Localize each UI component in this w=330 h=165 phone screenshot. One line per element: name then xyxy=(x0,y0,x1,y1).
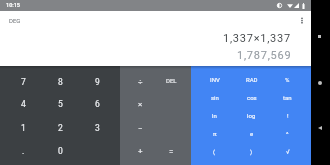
staticText: INV xyxy=(210,76,220,83)
button[interactable]: ) xyxy=(233,142,270,160)
button[interactable]: 0 xyxy=(42,139,79,162)
staticText: √ xyxy=(286,148,290,155)
staticText: 7 xyxy=(21,77,26,87)
button[interactable]: ^ xyxy=(269,124,306,142)
button[interactable]: More options xyxy=(294,12,310,28)
staticText: 6 xyxy=(95,99,100,109)
staticText: ) xyxy=(250,148,253,155)
staticText: % xyxy=(285,76,290,83)
button[interactable]: DEG xyxy=(4,13,26,27)
staticText: 10:15 xyxy=(6,2,20,8)
button[interactable]: 8 xyxy=(42,70,79,93)
staticText: e xyxy=(250,130,254,137)
staticText: DEL xyxy=(166,77,177,84)
staticText: 2 xyxy=(58,123,63,133)
staticText: sin xyxy=(211,94,219,101)
button[interactable]: − xyxy=(122,117,158,140)
staticText: ÷ xyxy=(138,78,143,87)
staticText: ( xyxy=(213,148,216,155)
button[interactable]: DEL xyxy=(153,69,189,92)
staticText: 8 xyxy=(58,77,63,87)
staticText: RAD xyxy=(246,76,258,83)
button[interactable]: cos xyxy=(233,88,270,106)
button[interactable]: Back xyxy=(310,116,330,140)
staticText: tan xyxy=(283,94,292,101)
button[interactable]: e xyxy=(233,124,270,142)
staticText: 4 xyxy=(21,99,26,109)
button[interactable]: log xyxy=(233,106,270,124)
button[interactable]: 9 xyxy=(79,70,116,93)
staticText: = xyxy=(169,147,174,156)
staticText: ^ xyxy=(286,130,289,137)
button[interactable]: . xyxy=(5,139,42,162)
staticText: 1,337×1,337 xyxy=(223,32,291,45)
button[interactable]: RAD xyxy=(233,70,270,88)
button[interactable]: = xyxy=(153,140,189,163)
button[interactable]: Recent apps xyxy=(309,24,329,48)
staticText: 1 xyxy=(21,123,26,133)
button[interactable]: ln xyxy=(196,106,233,124)
button[interactable]: Home xyxy=(310,71,330,95)
button[interactable]: √ xyxy=(269,142,306,160)
staticText: π xyxy=(213,130,217,137)
button[interactable]: % xyxy=(269,70,306,88)
button[interactable]: π xyxy=(196,124,233,142)
button[interactable]: INV xyxy=(196,70,233,88)
button[interactable]: tan xyxy=(269,88,306,106)
staticText: × xyxy=(138,100,143,109)
staticText: + xyxy=(138,147,143,156)
staticText: ln xyxy=(212,112,217,119)
button[interactable]: 3 xyxy=(79,116,116,139)
staticText: cos xyxy=(247,94,257,101)
button[interactable]: 5 xyxy=(42,92,79,115)
button[interactable]: 6 xyxy=(79,92,116,115)
button[interactable]: 4 xyxy=(5,92,42,115)
button[interactable]: sin xyxy=(196,88,233,106)
staticText: DEG xyxy=(9,17,21,24)
staticText: − xyxy=(138,124,143,133)
staticText: ! xyxy=(287,112,289,119)
staticText: 5 xyxy=(58,99,63,109)
button[interactable]: ! xyxy=(269,106,306,124)
staticText: 0 xyxy=(58,146,63,156)
button[interactable]: 1 xyxy=(5,116,42,139)
button[interactable]: + xyxy=(122,140,158,163)
staticText: 3 xyxy=(95,123,100,133)
staticText: . xyxy=(22,146,25,156)
staticText: 1,787,569 xyxy=(237,49,292,62)
button[interactable]: ÷ xyxy=(122,71,158,94)
button[interactable]: × xyxy=(122,93,158,116)
staticText: 9 xyxy=(95,77,100,87)
button[interactable]: 7 xyxy=(5,70,42,93)
button[interactable]: 2 xyxy=(42,116,79,139)
staticText: log xyxy=(247,112,256,119)
button[interactable]: ( xyxy=(196,142,233,160)
